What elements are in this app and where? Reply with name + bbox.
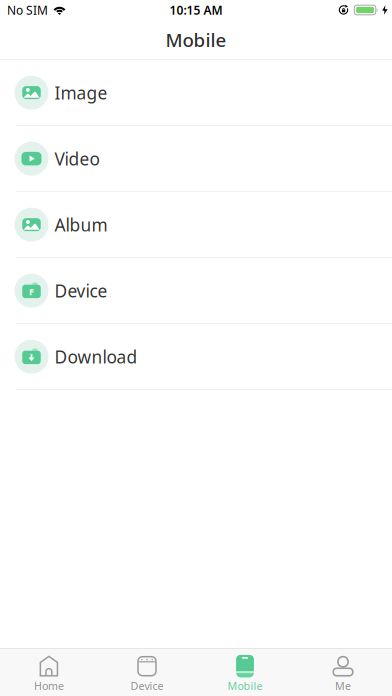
button[interactable]: Album [0,192,392,258]
staticText: Device [54,279,107,302]
button[interactable]: Home [0,649,98,696]
button[interactable]: Device [98,649,196,696]
button[interactable]: Mobile [196,649,294,696]
staticText: Mobile [165,27,226,52]
staticText: No SIM [7,2,48,18]
staticText: 10:15 AM [169,2,222,18]
staticText: Me [335,679,351,693]
staticText: Device [130,679,163,693]
staticText: Mobile [227,679,262,693]
staticText: Home [34,679,64,693]
button[interactable]: Me [294,649,392,696]
staticText: Download [54,345,137,368]
staticText: F [29,285,34,298]
button[interactable]: Video [0,126,392,192]
button[interactable]: F [0,258,392,324]
staticText: Album [54,213,107,236]
button[interactable]: Download [0,324,392,390]
staticText: Video [54,147,99,170]
button[interactable]: Image [0,60,392,126]
staticText: Image [54,81,107,104]
